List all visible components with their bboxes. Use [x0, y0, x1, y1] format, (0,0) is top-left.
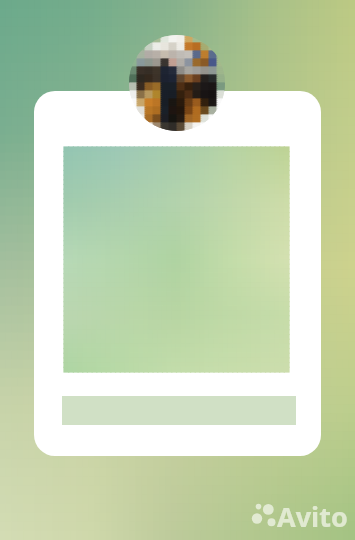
- button[interactable]: Avito: [251, 497, 347, 529]
- button[interactable]: Profile photo: [129, 35, 225, 131]
- button[interactable]: [34, 91, 321, 456]
- staticText: Avito: [277, 498, 348, 530]
